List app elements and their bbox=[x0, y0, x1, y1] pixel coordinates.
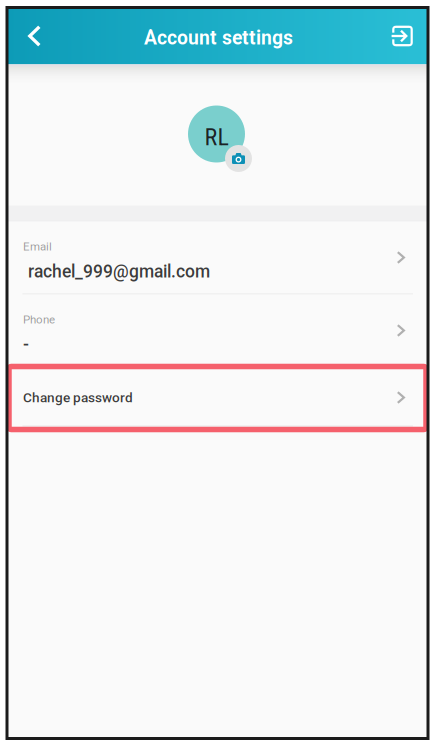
staticText: Change password bbox=[23, 389, 133, 405]
button[interactable]: Phone bbox=[7, 294, 428, 366]
button[interactable]: Back bbox=[12, 7, 56, 64]
button[interactable]: Email bbox=[7, 221, 428, 293]
button[interactable]: Sign out bbox=[380, 7, 424, 64]
button[interactable]: Change photo bbox=[225, 145, 252, 172]
staticText: Phone bbox=[23, 313, 55, 326]
staticText: Account settings bbox=[144, 27, 293, 49]
staticText: RL bbox=[204, 123, 228, 151]
staticText: Email bbox=[23, 240, 52, 253]
staticText: - bbox=[23, 334, 29, 355]
staticText: rachel_999@gmail.com bbox=[28, 261, 210, 282]
button[interactable]: Change password bbox=[7, 369, 428, 425]
